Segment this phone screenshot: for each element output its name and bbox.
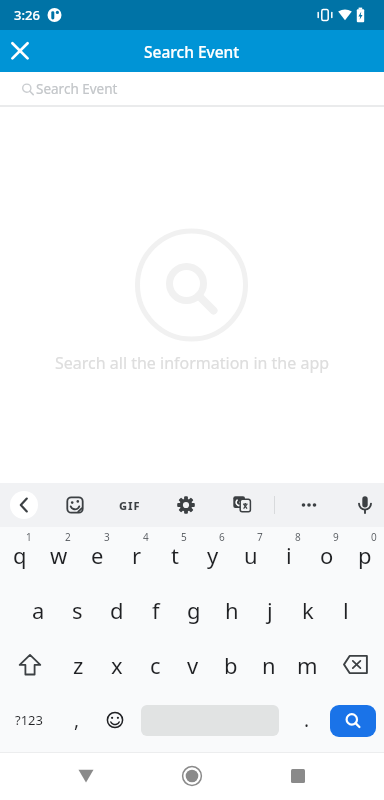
button[interactable]: g — [175, 582, 213, 637]
button[interactable] — [289, 485, 329, 525]
button[interactable] — [345, 485, 384, 525]
button[interactable] — [96, 692, 134, 747]
button[interactable] — [4, 30, 36, 72]
staticText: 5 — [181, 530, 187, 544]
staticText: q — [13, 540, 27, 570]
staticText: 9 — [333, 530, 339, 544]
button[interactable]: n — [250, 637, 288, 692]
button[interactable]: w — [39, 527, 78, 582]
staticText: 0 — [371, 530, 377, 544]
button[interactable]: ?123 — [0, 692, 58, 747]
staticText: p — [358, 540, 372, 570]
staticText: a — [32, 595, 45, 625]
staticText: r — [132, 540, 142, 570]
staticText: Search Event — [36, 80, 118, 98]
button[interactable]: GIF — [110, 485, 150, 525]
button[interactable]: t — [156, 527, 194, 582]
staticText: f — [152, 595, 160, 625]
staticText: GIF — [119, 498, 141, 513]
button[interactable]: c — [136, 637, 174, 692]
button[interactable]: o — [308, 527, 346, 582]
button[interactable]: r — [117, 527, 156, 582]
staticText: 8 — [295, 530, 301, 544]
button[interactable]: q — [0, 527, 39, 582]
button[interactable]: a — [19, 582, 58, 637]
button[interactable]: i — [270, 527, 308, 582]
button[interactable]: p — [346, 527, 384, 582]
staticText: x — [111, 650, 123, 680]
button[interactable] — [168, 752, 216, 800]
button[interactable]: l — [327, 582, 365, 637]
button[interactable]: m — [288, 637, 326, 692]
staticText: s — [72, 595, 83, 625]
button[interactable]: e — [78, 527, 117, 582]
staticText: 3:26 — [14, 6, 40, 24]
button[interactable]: y — [194, 527, 232, 582]
staticText: d — [110, 595, 124, 625]
staticText: c — [150, 650, 161, 680]
staticText: b — [224, 650, 238, 680]
button[interactable]: h — [213, 582, 251, 637]
button[interactable] — [166, 485, 206, 525]
staticText: w — [50, 540, 68, 570]
staticText: n — [262, 650, 276, 680]
button[interactable]: v — [174, 637, 212, 692]
button[interactable]: d — [97, 582, 136, 637]
button[interactable] — [330, 705, 376, 737]
staticText: Search all the information in the app — [55, 352, 330, 374]
button[interactable]: Search Event — [0, 72, 384, 105]
button[interactable] — [222, 485, 262, 525]
staticText: i — [286, 540, 292, 570]
button[interactable] — [326, 637, 384, 692]
staticText: g — [187, 595, 201, 625]
staticText: z — [73, 650, 84, 680]
staticText: k — [302, 595, 314, 625]
button[interactable]: u — [232, 527, 270, 582]
staticText: 2 — [65, 530, 71, 544]
staticText: 6 — [219, 530, 225, 544]
staticText: 1 — [26, 530, 32, 544]
staticText: l — [343, 595, 349, 625]
staticText: Search Event — [144, 41, 240, 62]
staticText: j — [267, 595, 273, 625]
button[interactable] — [62, 752, 110, 800]
button[interactable]: x — [98, 637, 136, 692]
button[interactable] — [55, 485, 95, 525]
staticText: h — [225, 595, 239, 625]
button[interactable]: z — [59, 637, 98, 692]
button[interactable]: f — [136, 582, 175, 637]
staticText: 7 — [257, 530, 263, 544]
staticText: ?123 — [15, 711, 43, 729]
staticText: t — [171, 540, 179, 570]
staticText: y — [207, 540, 219, 570]
button[interactable]: b — [212, 637, 250, 692]
staticText: m — [297, 650, 318, 680]
button[interactable]: j — [251, 582, 289, 637]
button[interactable] — [4, 485, 44, 525]
button[interactable]: s — [58, 582, 97, 637]
button[interactable]: k — [289, 582, 327, 637]
staticText: v — [187, 650, 199, 680]
staticText: o — [320, 540, 334, 570]
button[interactable]: , — [58, 692, 96, 747]
staticText: 4 — [143, 530, 149, 544]
button[interactable]: . — [288, 692, 326, 747]
staticText: , — [74, 707, 80, 733]
button[interactable] — [0, 637, 59, 692]
button[interactable] — [274, 752, 322, 800]
staticText: e — [91, 540, 104, 570]
staticText: . — [304, 707, 310, 733]
staticText: u — [244, 540, 258, 570]
staticText: 3 — [104, 530, 110, 544]
